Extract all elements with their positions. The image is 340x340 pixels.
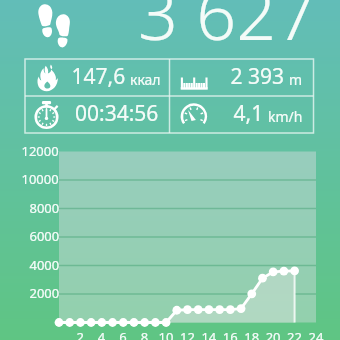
- button[interactable]: Step activity chart: [0, 0, 340, 340]
